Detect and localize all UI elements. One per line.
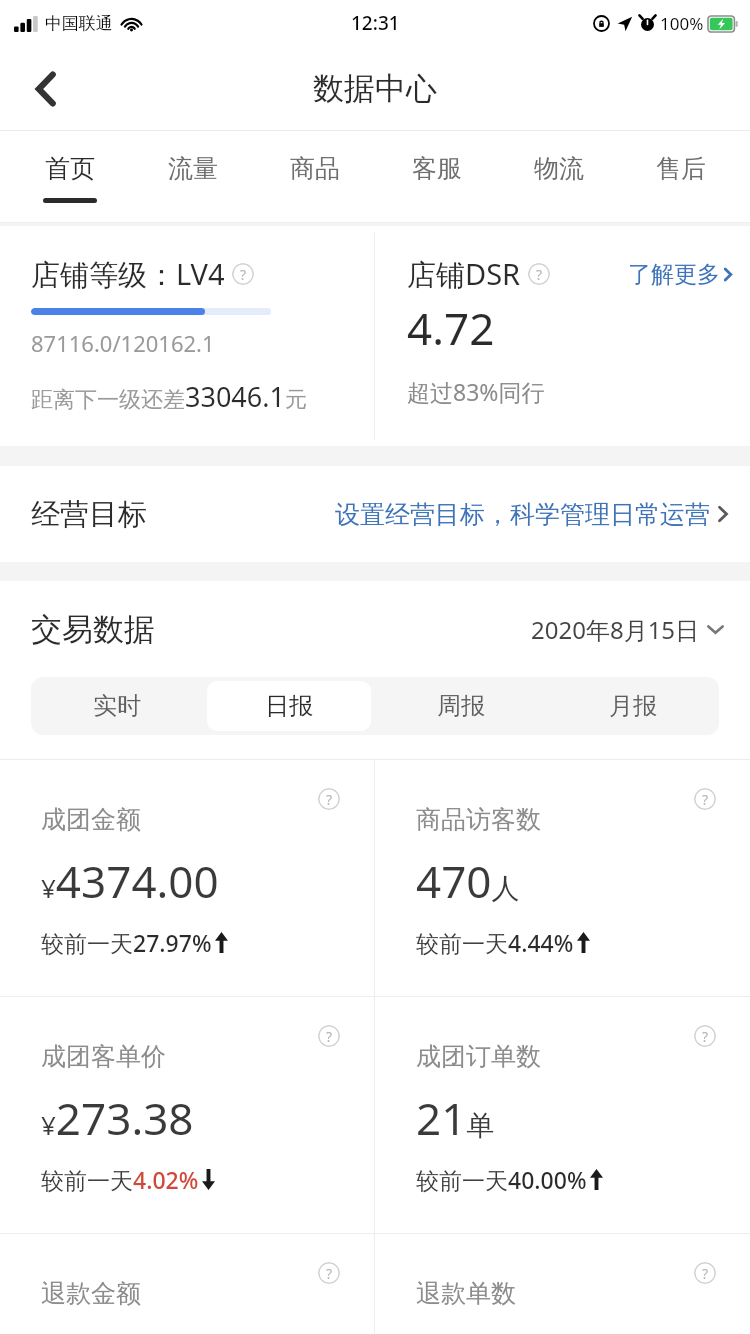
staticText: 21单 <box>416 1088 495 1148</box>
button[interactable]: Help <box>232 263 254 285</box>
staticText: 实时 <box>93 691 141 721</box>
staticText: 中国联通 <box>45 13 113 34</box>
button[interactable]: 2020年8月15日 <box>531 613 724 646</box>
button[interactable]: 月报 <box>551 681 715 731</box>
button[interactable]: 经营目标 <box>0 466 750 562</box>
staticText: 退款单数 <box>416 1278 516 1309</box>
staticText: 较前一天40.00% <box>416 1164 587 1195</box>
staticText: ¥4374.00 <box>41 851 219 911</box>
staticText: 了解更多 <box>628 260 720 289</box>
button[interactable]: 店铺等级：LV4 <box>0 226 374 446</box>
staticText: 数据中心 <box>313 69 437 108</box>
button[interactable]: Help <box>528 263 550 285</box>
button[interactable]: Back <box>18 61 74 117</box>
staticText: 物流 <box>534 153 584 184</box>
button[interactable]: Help <box>694 1262 716 1284</box>
button[interactable]: 客服 <box>376 131 498 223</box>
staticText: ? <box>536 265 543 284</box>
staticText: 较前一天4.02% <box>41 1164 199 1195</box>
staticText: 店铺等级：LV4 <box>31 254 225 294</box>
staticText: 经营目标 <box>31 496 147 533</box>
staticText: 店铺DSR <box>407 254 521 294</box>
staticText: ? <box>702 1027 709 1046</box>
button[interactable]: 成团金额 <box>0 760 374 996</box>
staticText: 商品 <box>290 153 340 184</box>
button[interactable]: Help <box>694 788 716 810</box>
staticText: 87116.0/120162.1 <box>31 328 215 358</box>
staticText: 较前一天27.97% <box>41 927 212 958</box>
staticText: ? <box>702 1264 709 1283</box>
staticText: 日报 <box>265 691 313 721</box>
staticText: 设置经营目标，科学管理日常运营 <box>335 499 710 530</box>
button[interactable]: 流量 <box>131 131 254 223</box>
button[interactable]: 实时 <box>35 681 199 731</box>
staticText: 首页 <box>45 153 95 184</box>
button[interactable]: 退款单数 <box>375 1234 750 1334</box>
staticText: ? <box>702 790 709 809</box>
staticText: 12:31 <box>351 10 400 36</box>
staticText: 4.72 <box>407 298 495 358</box>
button[interactable]: 售后 <box>620 131 742 223</box>
button[interactable]: 了解更多 <box>628 260 732 289</box>
staticText: ? <box>240 265 247 284</box>
staticText: 成团金额 <box>41 804 141 835</box>
staticText: 较前一天4.44% <box>416 927 574 958</box>
button[interactable]: 退款金额 <box>0 1234 374 1334</box>
staticText: ? <box>326 790 333 809</box>
staticText: 距离下一级还差33046.1元 <box>31 378 307 415</box>
button[interactable]: 商品访客数 <box>375 760 750 996</box>
button[interactable]: 首页 <box>8 131 131 223</box>
staticText: ? <box>326 1264 333 1283</box>
staticText: 售后 <box>656 153 706 184</box>
staticText: 流量 <box>168 153 218 184</box>
button[interactable]: Help <box>318 1262 340 1284</box>
staticText: 成团订单数 <box>416 1041 541 1072</box>
staticText: 2020年8月15日 <box>531 613 700 646</box>
staticText: 超过83%同行 <box>407 376 545 407</box>
staticText: 客服 <box>412 153 462 184</box>
button[interactable]: 成团订单数 <box>375 997 750 1233</box>
staticText: 100% <box>660 12 704 35</box>
staticText: 月报 <box>609 691 657 721</box>
staticText: 周报 <box>437 691 485 721</box>
staticText: 退款金额 <box>41 1278 141 1309</box>
button[interactable]: Help <box>318 788 340 810</box>
staticText: ¥273.38 <box>41 1088 194 1148</box>
button[interactable]: 商品 <box>254 131 376 223</box>
button[interactable]: 物流 <box>498 131 620 223</box>
button[interactable]: 店铺DSR <box>375 226 750 446</box>
button[interactable]: Help <box>318 1025 340 1047</box>
button[interactable]: 周报 <box>379 681 543 731</box>
button[interactable]: 成团客单价 <box>0 997 374 1233</box>
staticText: ? <box>326 1027 333 1046</box>
staticText: 商品访客数 <box>416 804 541 835</box>
button[interactable]: 日报 <box>207 681 371 731</box>
button[interactable]: Help <box>694 1025 716 1047</box>
staticText: 470人 <box>416 851 520 911</box>
staticText: 交易数据 <box>31 610 155 649</box>
staticText: 成团客单价 <box>41 1041 166 1072</box>
